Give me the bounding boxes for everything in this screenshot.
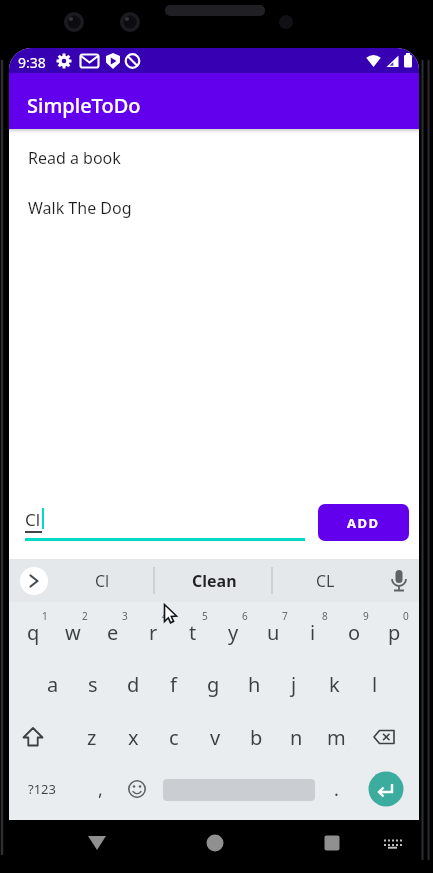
button[interactable]: h (234, 662, 274, 706)
staticText: i (310, 619, 316, 646)
button[interactable]: y (213, 610, 253, 654)
button[interactable]: t (173, 610, 213, 654)
staticText: l (372, 671, 378, 698)
staticText: 3 (122, 609, 128, 623)
button[interactable]: v (195, 715, 235, 759)
staticText: h (248, 671, 261, 698)
staticText: m (327, 724, 346, 751)
button[interactable]: i (293, 610, 333, 654)
button[interactable] (314, 825, 350, 861)
button[interactable]: j (274, 662, 314, 706)
button[interactable]: a (33, 662, 73, 706)
staticText: j (291, 671, 297, 698)
staticText: c (169, 724, 179, 751)
staticText: n (290, 724, 303, 751)
staticText: ADD (347, 514, 380, 532)
button[interactable]: d (113, 662, 153, 706)
staticText: 0 (403, 609, 409, 623)
staticText: Walk The Dog (28, 197, 132, 219)
button[interactable]: n (276, 715, 316, 759)
button[interactable]: , (80, 767, 120, 811)
staticText: p (388, 619, 401, 646)
staticText: b (250, 724, 263, 751)
button[interactable] (197, 825, 233, 861)
button[interactable]: f (153, 662, 193, 706)
staticText: 2 (82, 609, 88, 623)
button[interactable]: z (72, 715, 112, 759)
button[interactable]: CL (305, 559, 345, 602)
staticText: Cl (95, 570, 110, 592)
staticText: 9 (363, 609, 369, 623)
staticText: Clean (192, 570, 237, 592)
button[interactable]: r (133, 610, 173, 654)
button[interactable]: c (154, 715, 194, 759)
button[interactable]: q (13, 610, 53, 654)
staticText: a (47, 671, 59, 698)
button[interactable] (79, 825, 115, 861)
staticText: t (189, 619, 197, 646)
staticText: 6 (242, 609, 248, 623)
staticText: d (127, 671, 140, 698)
staticText: 1 (42, 609, 48, 623)
staticText: . (334, 777, 339, 802)
button[interactable]: x (113, 715, 153, 759)
staticText: k (329, 671, 340, 698)
staticText: CL (316, 570, 335, 592)
button[interactable]: o (334, 610, 374, 654)
staticText: u (267, 619, 280, 646)
staticText: 7 (282, 609, 288, 623)
staticText: e (107, 619, 119, 646)
staticText: , (98, 777, 103, 802)
staticText: 9:38 (18, 53, 46, 72)
staticText: w (65, 619, 81, 646)
button[interactable]: p (374, 610, 414, 654)
staticText: Read a book (28, 147, 121, 169)
button[interactable]: Clean (174, 559, 254, 602)
staticText: x (128, 724, 139, 751)
button[interactable]: s (73, 662, 113, 706)
button[interactable]: b (236, 715, 276, 759)
staticText: s (88, 671, 98, 698)
staticText: 5 (202, 609, 208, 623)
staticText: SimpleToDo (27, 92, 141, 119)
button[interactable]: u (253, 610, 293, 654)
staticText: v (210, 724, 221, 751)
button[interactable]: Cl (25, 508, 305, 541)
staticText: q (27, 619, 40, 646)
staticText: f (170, 671, 177, 698)
staticText: 8 (322, 609, 328, 623)
button[interactable]: Walk The Dog (28, 183, 419, 233)
button[interactable]: ADD (318, 504, 409, 541)
staticText: z (87, 724, 97, 751)
button[interactable]: . (316, 767, 356, 811)
button[interactable]: w (53, 610, 93, 654)
staticText: Cl (25, 508, 41, 531)
staticText: ?123 (28, 780, 56, 798)
button[interactable]: ?123 (20, 767, 64, 811)
button[interactable]: Cl (82, 559, 122, 602)
staticText: 4 (162, 609, 168, 623)
button[interactable]: m (316, 715, 356, 759)
button[interactable]: l (355, 662, 395, 706)
staticText: y (228, 619, 239, 646)
button[interactable]: g (193, 662, 233, 706)
staticText: r (149, 619, 158, 646)
staticText: g (207, 671, 220, 698)
staticText: o (348, 619, 361, 646)
button[interactable]: k (314, 662, 354, 706)
button[interactable]: e (93, 610, 133, 654)
button[interactable]: Read a book (28, 133, 419, 183)
